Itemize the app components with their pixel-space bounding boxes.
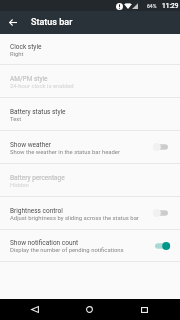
button[interactable]: Battery percentage [0,164,180,196]
staticText: Clock style [10,43,42,51]
button[interactable]: Back [16,299,53,320]
staticText: Show the weather in the status bar heade… [10,149,120,156]
button[interactable]: Switch off [151,206,168,220]
staticText: Brightness control [10,207,63,215]
staticText: Status bar [31,17,73,28]
button[interactable]: Switch on [151,239,168,253]
staticText: AM/PM style [10,75,48,83]
button[interactable]: Show notification count [0,230,180,261]
button[interactable]: AM/PM style [0,65,180,97]
button[interactable]: Battery status style [0,98,180,130]
staticText: Display the number of pending notificati… [10,247,124,254]
button[interactable]: Show weather [0,131,180,163]
staticText: Show notification count [10,239,79,247]
staticText: 24-hour clock is enabled [10,83,74,90]
staticText: Text [10,116,22,123]
button[interactable]: Recent apps [126,299,163,320]
staticText: Show weather [10,141,51,149]
staticText: Battery status style [10,108,66,116]
staticText: Battery percentage [10,174,65,182]
staticText: Hidden [10,182,29,189]
button[interactable]: Clock style [0,34,180,64]
staticText: Adjust brightness by sliding across the … [10,215,139,222]
button[interactable]: Home [71,299,108,320]
staticText: 64% [147,3,157,9]
staticText: 11:29 [162,2,179,10]
button[interactable]: Switch off [151,140,168,154]
button[interactable]: Navigate up [0,11,25,34]
button[interactable]: Brightness control [0,197,180,229]
staticText: Right [10,51,24,58]
